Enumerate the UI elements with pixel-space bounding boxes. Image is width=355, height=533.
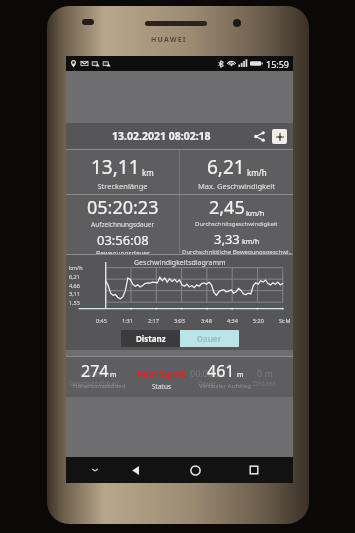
button[interactable]: Navigationsleiste ausblenden [84, 457, 106, 483]
button[interactable]: Letzte Apps [241, 457, 267, 483]
staticText: 2:17 [148, 317, 159, 324]
staticText: km [142, 167, 154, 178]
staticText: km/h [242, 237, 260, 247]
staticText: Distanz [253, 379, 276, 388]
staticText: Durchschnittliche Bewegungsgeschwi.. [182, 248, 292, 254]
staticText: 6,21 [207, 154, 245, 180]
staticText: 5:20 [253, 317, 264, 324]
staticText: 1:31 [122, 317, 133, 324]
staticText: Status [152, 382, 172, 391]
staticText: Höhenunterschied [73, 382, 126, 390]
staticText: Kein Signal [137, 367, 187, 379]
button[interactable]: Startseite [182, 457, 208, 483]
staticText: Geschwindigkeit [69, 379, 120, 388]
staticText: Streckenlänge [97, 181, 148, 191]
staticText: Max. Geschwindigkeit [198, 181, 275, 191]
staticText: 274 [81, 360, 109, 382]
staticText: 461 [207, 360, 235, 382]
staticText: km/h [69, 264, 83, 271]
staticText: Durchschnitsgeschwindigkeit [195, 220, 278, 228]
staticText: Bewegungsdauer [96, 249, 150, 254]
staticText: 3,11 [69, 290, 80, 297]
staticText: 3,33 [214, 230, 240, 248]
button[interactable]: Distanz [121, 330, 180, 347]
staticText: 3:03 [174, 317, 185, 324]
staticText: 4,66 [69, 282, 80, 289]
staticText: St:M [279, 317, 291, 324]
staticText: 6,21 [69, 273, 80, 280]
staticText: 05:20:23 [87, 195, 159, 220]
staticText: Geschwindigkeitsdiagramm [134, 258, 226, 268]
staticText: Dauer [198, 379, 217, 388]
button[interactable]: Teilen [250, 127, 268, 145]
staticText: 03:56:08 [97, 231, 149, 249]
button[interactable]: Exportieren [272, 129, 287, 144]
staticText: 4:34 [227, 317, 238, 324]
staticText: -- km/h [79, 367, 110, 379]
staticText: 0:45 [96, 317, 107, 324]
staticText: Vertikaler Aufstieg [199, 382, 251, 390]
staticText: 13.02.2021 08:02:18 [112, 129, 211, 143]
staticText: Distanz [136, 333, 166, 344]
staticText: 00:00:22 [190, 367, 226, 379]
staticText: 1,55 [69, 299, 80, 306]
staticText: km/h [246, 208, 265, 218]
staticText: Dauer [197, 333, 222, 344]
staticText: 13,11 [91, 154, 140, 180]
staticText: m [110, 370, 117, 380]
button[interactable]: Dauer [180, 330, 239, 347]
staticText: 0 m [257, 367, 273, 379]
staticText: HUAWEI [151, 35, 187, 45]
staticText: 2,45 [209, 195, 245, 220]
staticText: Aufzeichnungsdauer [91, 220, 155, 229]
button[interactable]: Zurück [122, 457, 148, 483]
staticText: km/h [247, 167, 267, 178]
staticText: m [237, 370, 244, 380]
staticText: 15:59 [266, 58, 290, 70]
staticText: 3:48 [201, 317, 212, 324]
